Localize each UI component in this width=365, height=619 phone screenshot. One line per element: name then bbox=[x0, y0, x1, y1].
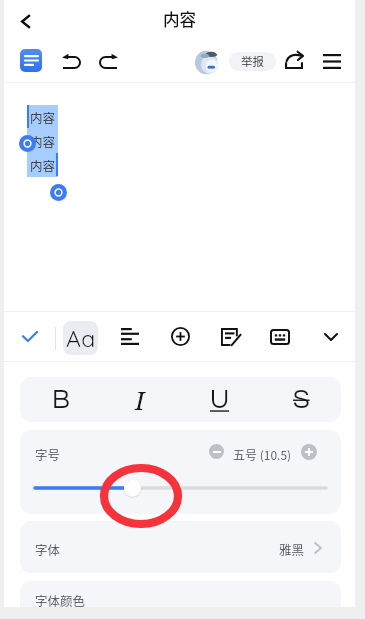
button[interactable]: Undo bbox=[57, 50, 85, 74]
staticText: 内容 bbox=[30, 156, 56, 174]
button[interactable]: Insert bbox=[159, 317, 201, 356]
button[interactable]: Keyboard bbox=[259, 317, 301, 356]
staticText: 内容 bbox=[163, 7, 197, 31]
button[interactable]: Menu bbox=[319, 49, 344, 74]
staticText: 举报 bbox=[241, 53, 264, 70]
staticText: 字体颜色 bbox=[35, 591, 86, 607]
button[interactable]: Font style bbox=[63, 321, 98, 355]
button[interactable]: U bbox=[180, 377, 260, 422]
button[interactable]: Align bbox=[109, 317, 151, 356]
button[interactable]: 字体颜色 bbox=[20, 581, 341, 607]
button[interactable]: Review bbox=[210, 317, 252, 356]
staticText: 雅黑 bbox=[279, 540, 305, 558]
button[interactable]: 字体 bbox=[20, 521, 341, 573]
button[interactable]: B bbox=[21, 377, 101, 422]
button[interactable]: Increase font size bbox=[301, 444, 317, 460]
button[interactable]: Share bbox=[281, 47, 307, 73]
button[interactable]: Collapse bbox=[310, 317, 352, 356]
button[interactable]: I bbox=[100, 377, 180, 422]
button[interactable]: S bbox=[261, 377, 341, 422]
staticText: 字体 bbox=[35, 540, 61, 558]
staticText: Aa bbox=[66, 324, 96, 353]
staticText: 字号 bbox=[35, 445, 61, 463]
staticText: 内容 bbox=[30, 132, 56, 150]
staticText: B bbox=[52, 386, 70, 414]
button[interactable]: Confirm bbox=[14, 320, 46, 352]
button[interactable]: Font size slider bbox=[35, 480, 326, 496]
button[interactable]: Redo bbox=[94, 50, 122, 74]
staticText: 内容 bbox=[30, 108, 56, 126]
button[interactable]: Back bbox=[7, 0, 45, 42]
staticText: I bbox=[135, 382, 145, 417]
staticText: 五号 (10.5) bbox=[233, 446, 292, 463]
staticText: S bbox=[293, 386, 310, 414]
button[interactable]: Text format bbox=[20, 49, 42, 72]
button[interactable]: Account bbox=[195, 50, 220, 75]
button[interactable]: 举报 bbox=[229, 52, 276, 71]
button[interactable]: Decrease font size bbox=[209, 444, 224, 459]
staticText: U bbox=[210, 386, 230, 414]
